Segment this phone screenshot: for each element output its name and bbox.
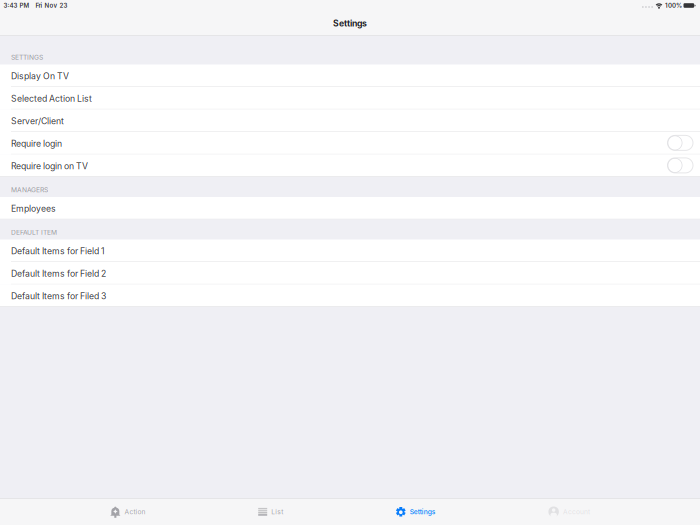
button[interactable]: Default Items for Field 1 (0, 239, 700, 262)
staticText: Action (125, 508, 146, 516)
button[interactable]: Default Items for Field 2 (0, 262, 700, 284)
button[interactable]: Default Items for Filed 3 (0, 284, 700, 307)
button[interactable]: Selected Action List (0, 87, 700, 109)
button[interactable]: Account (548, 498, 590, 525)
staticText: MANAGERS (11, 186, 48, 194)
staticText: DEFAULT ITEM (11, 228, 57, 236)
button[interactable]: Employees (0, 197, 700, 219)
button[interactable]: Action (110, 498, 146, 525)
button[interactable]: Require login (0, 132, 700, 154)
staticText: Selected Action List (11, 93, 92, 104)
staticText: List (271, 508, 283, 516)
staticText: Require login on TV (11, 161, 88, 171)
staticText: Fri Nov 23 (35, 2, 67, 9)
staticText: Settings (410, 508, 436, 516)
button[interactable]: List (258, 498, 283, 525)
button[interactable]: Require login on TV (0, 154, 700, 177)
staticText: Default Items for Filed 3 (11, 291, 106, 301)
staticText: SETTINGS (11, 53, 43, 61)
staticText: Server/Client (11, 116, 64, 126)
staticText: 3:43 PM (3, 2, 29, 9)
staticText: Account (563, 508, 590, 516)
button[interactable]: Server/Client (0, 109, 700, 132)
staticText: Default Items for Field 1 (11, 246, 105, 256)
staticText: Default Items for Field 2 (11, 268, 106, 279)
button[interactable]: Display On TV (0, 64, 700, 87)
staticText: Display On TV (11, 71, 69, 81)
button[interactable]: Settings (396, 498, 436, 525)
staticText: Employees (11, 203, 56, 214)
staticText: Settings (333, 18, 367, 28)
staticText: Require login (11, 138, 62, 149)
staticText: 100% (665, 2, 682, 9)
